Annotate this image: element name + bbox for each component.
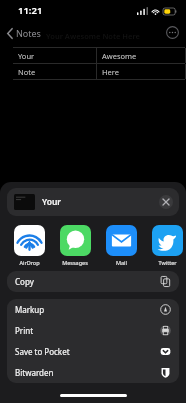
button[interactable]: More options bbox=[165, 25, 180, 40]
button[interactable]: AirDrop bbox=[13, 225, 45, 266]
staticText: Here bbox=[102, 67, 119, 77]
staticText: Notes bbox=[16, 27, 41, 39]
button[interactable]: Close bbox=[159, 195, 173, 209]
button[interactable]: Markup bbox=[7, 299, 179, 320]
button[interactable]: Copy bbox=[7, 271, 179, 292]
button[interactable]: Save to Pocket bbox=[7, 341, 179, 362]
staticText: Messages bbox=[62, 259, 88, 266]
button[interactable]: Messages bbox=[59, 225, 91, 266]
staticText: Bitwarden bbox=[15, 367, 160, 378]
staticText: Your Awesome Note Here bbox=[46, 31, 140, 41]
staticText: Awesome bbox=[102, 51, 137, 61]
staticText: Print bbox=[15, 325, 160, 336]
button[interactable]: Notes bbox=[0, 24, 47, 42]
button[interactable]: Bitwarden bbox=[7, 362, 179, 383]
staticText: AirDrop bbox=[19, 259, 40, 266]
staticText: Markup bbox=[15, 304, 160, 315]
staticText: Save to Pocket bbox=[15, 346, 160, 357]
staticText: Twitter bbox=[158, 259, 177, 266]
staticText: 11:21 bbox=[18, 4, 43, 17]
staticText: Your bbox=[18, 51, 35, 61]
button[interactable]: Mail bbox=[105, 225, 137, 266]
staticText: Mail bbox=[116, 259, 127, 266]
button[interactable]: Print bbox=[7, 320, 179, 341]
staticText: Note bbox=[18, 67, 36, 77]
button[interactable]: Twitter bbox=[151, 225, 183, 266]
staticText: Your bbox=[42, 196, 62, 208]
staticText: Copy bbox=[15, 276, 160, 287]
